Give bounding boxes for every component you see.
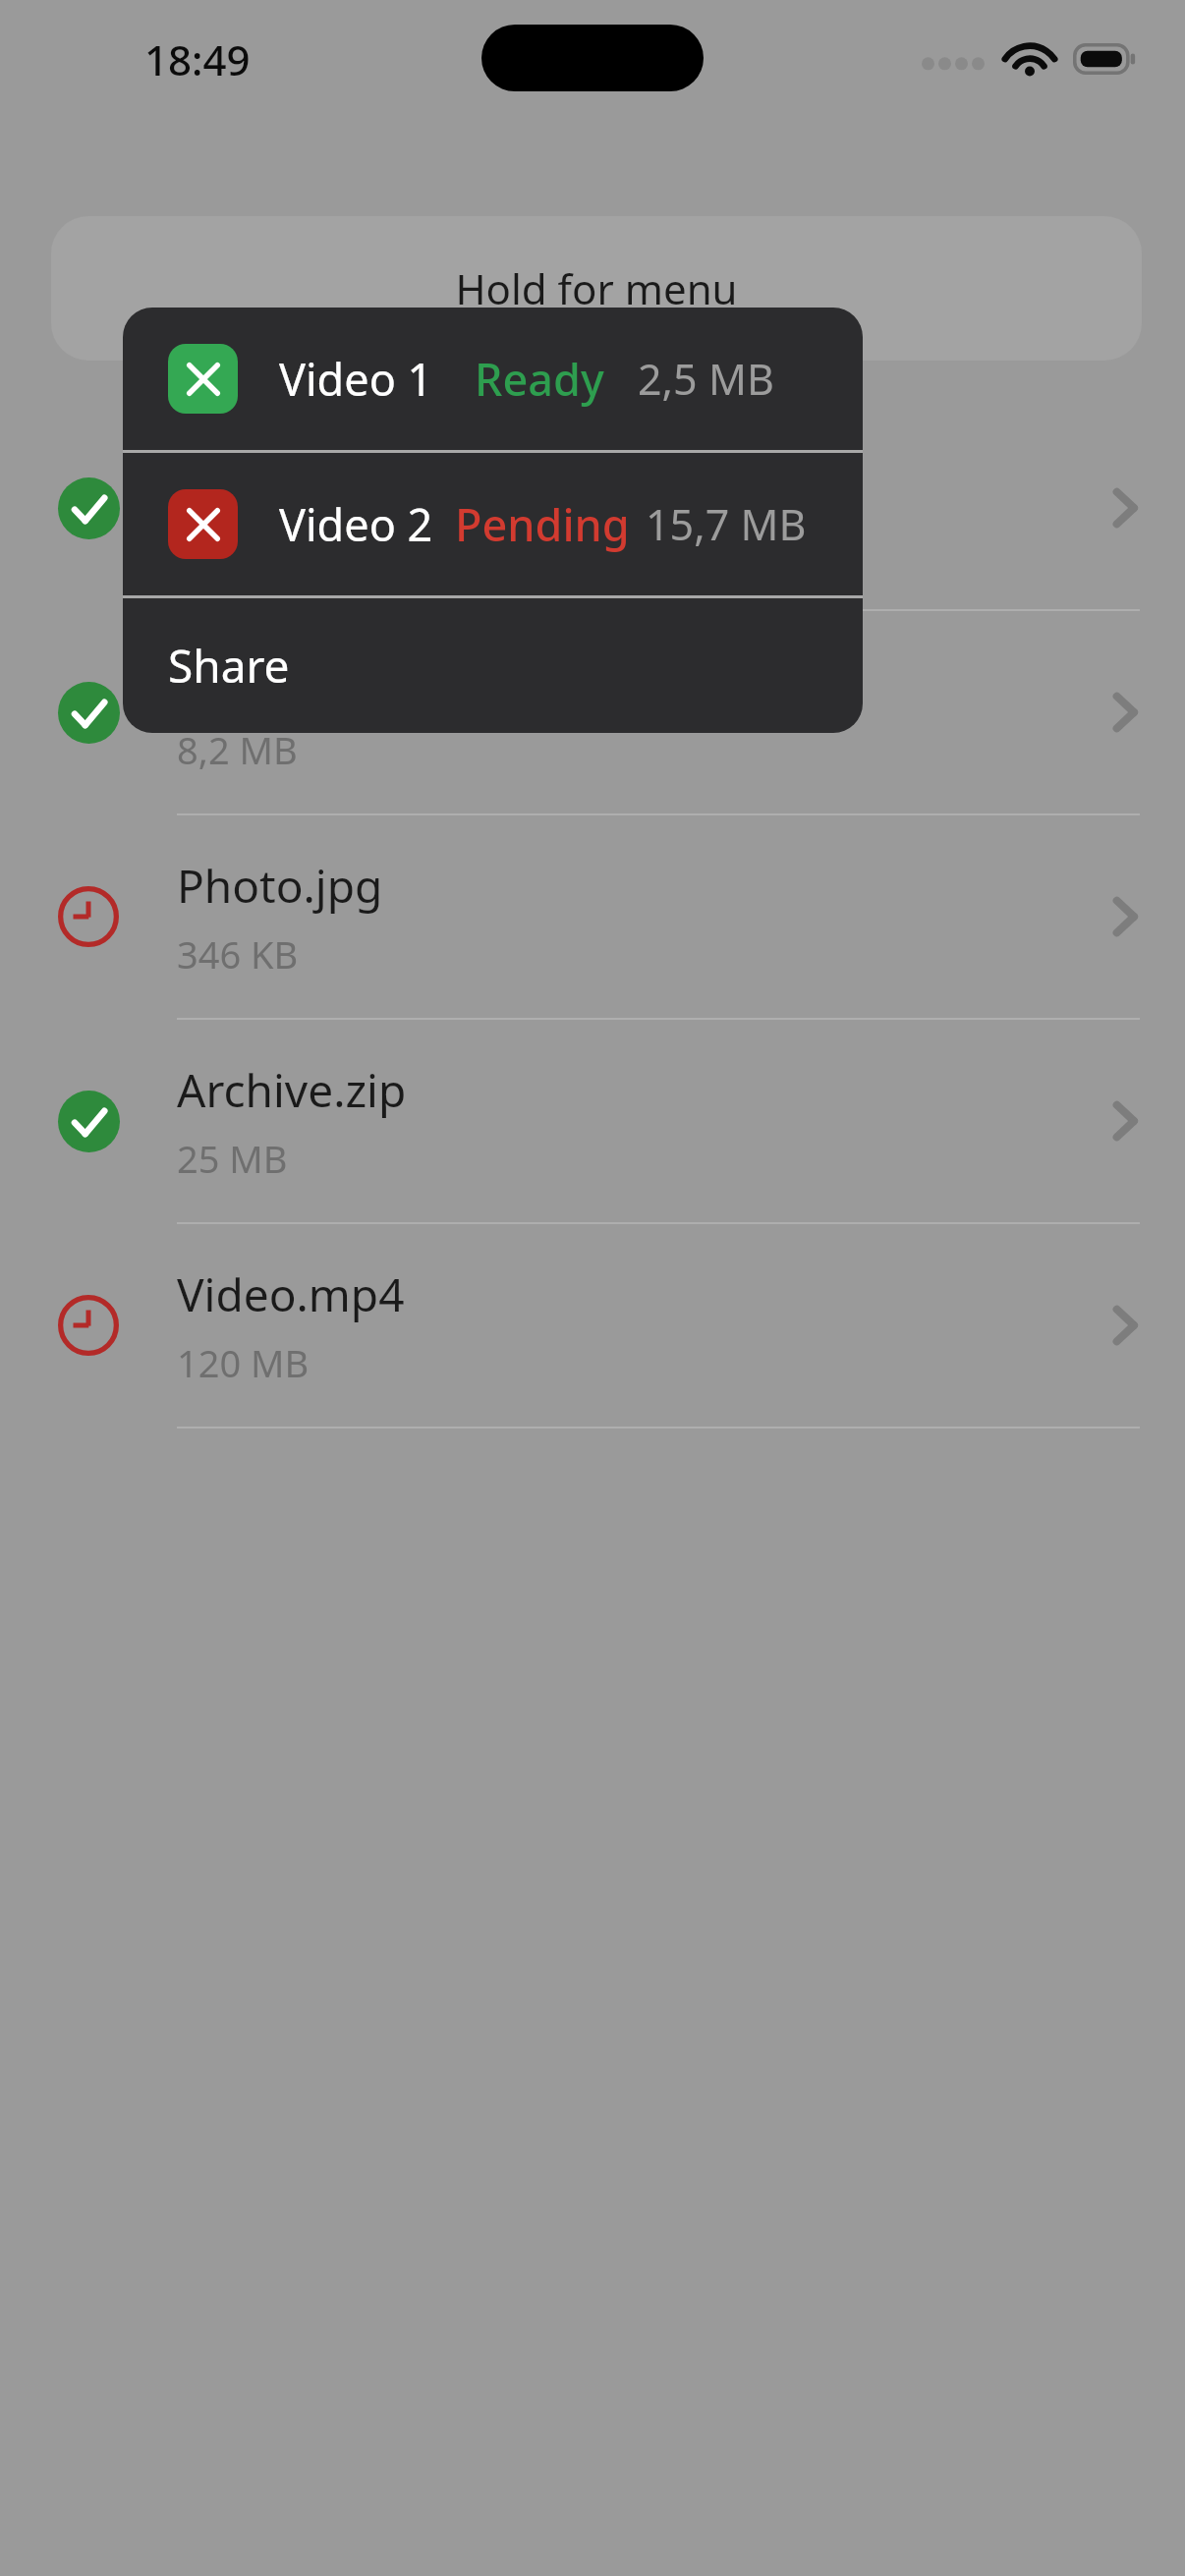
button[interactable]: Video 2 — [123, 453, 863, 595]
button[interactable]: Share — [123, 598, 863, 733]
staticText: Photo.jpg — [177, 855, 383, 917]
other: Open Archive.zip — [1110, 1097, 1140, 1145]
button[interactable]: Hold for menu — [51, 216, 1142, 361]
staticText: 120 MB — [177, 1337, 310, 1388]
staticText: 8,2 MB — [177, 724, 298, 775]
other: Open Notes.txt — [1110, 689, 1140, 736]
staticText: Pending — [455, 494, 630, 554]
staticText: 2,5 MB — [638, 350, 774, 408]
staticText: Notes.txt — [177, 650, 371, 712]
staticText: 18:49 — [144, 31, 251, 87]
button[interactable]: Report.pdf — [0, 407, 1185, 611]
staticText: Video.mp4 — [177, 1263, 405, 1325]
staticText: Video 2 — [279, 494, 433, 554]
staticText: 25 MB — [177, 1133, 288, 1184]
staticText: Ready — [475, 349, 604, 409]
staticText: 15,7 MB — [646, 495, 807, 553]
button[interactable]: Notes.txt — [0, 611, 1185, 815]
staticText: 1,2 MB — [177, 520, 298, 571]
staticText: Report.pdf — [177, 446, 405, 508]
button[interactable]: Video 1 — [123, 308, 863, 450]
staticText: Share — [168, 635, 290, 697]
staticText: Video 1 — [279, 349, 433, 409]
staticText: Hold for menu — [455, 260, 738, 316]
staticText: Archive.zip — [177, 1059, 407, 1121]
button[interactable]: Archive.zip — [0, 1020, 1185, 1224]
button[interactable]: Photo.jpg — [0, 815, 1185, 1020]
other: Open Report.pdf — [1110, 484, 1140, 532]
other: Open Video.mp4 — [1110, 1302, 1140, 1349]
other: Open Photo.jpg — [1110, 893, 1140, 940]
staticText: 346 KB — [177, 928, 299, 980]
button[interactable]: Video.mp4 — [0, 1224, 1185, 1428]
